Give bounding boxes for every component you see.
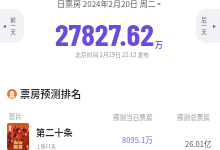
staticText: 一 <box>10 22 16 30</box>
staticText: 前 <box>10 16 16 24</box>
staticText: 一 <box>201 22 207 30</box>
staticText: 预测当日票房 <box>113 112 153 122</box>
staticText: 27827.62 <box>55 15 154 52</box>
staticText: 预测总票房 <box>177 112 210 122</box>
staticText: 日票房 2024年2月20日 周二 <box>57 0 156 10</box>
staticText: 第二十条 <box>36 125 73 138</box>
staticText: 上映11天 <box>36 142 56 149</box>
button[interactable]: 前一天 <box>0 9 24 43</box>
staticText: 26.01亿 <box>185 138 212 149</box>
button[interactable]: 票房预测排名 <box>7 86 82 101</box>
staticText: 万 <box>155 39 163 51</box>
staticText: 北京时间 2月19日 22:12 发布 <box>75 50 150 58</box>
staticText: 天 <box>10 28 16 36</box>
staticText: 8095.1万 <box>122 134 153 145</box>
staticText: 影片 <box>9 112 22 121</box>
button[interactable]: 后一天 <box>196 9 220 43</box>
button[interactable]: 1 <box>0 123 220 150</box>
staticText: 票房预测排名 <box>20 86 82 101</box>
staticText: 1 <box>9 124 11 132</box>
staticText: 后 <box>201 16 207 24</box>
staticText: 天 <box>201 28 207 36</box>
